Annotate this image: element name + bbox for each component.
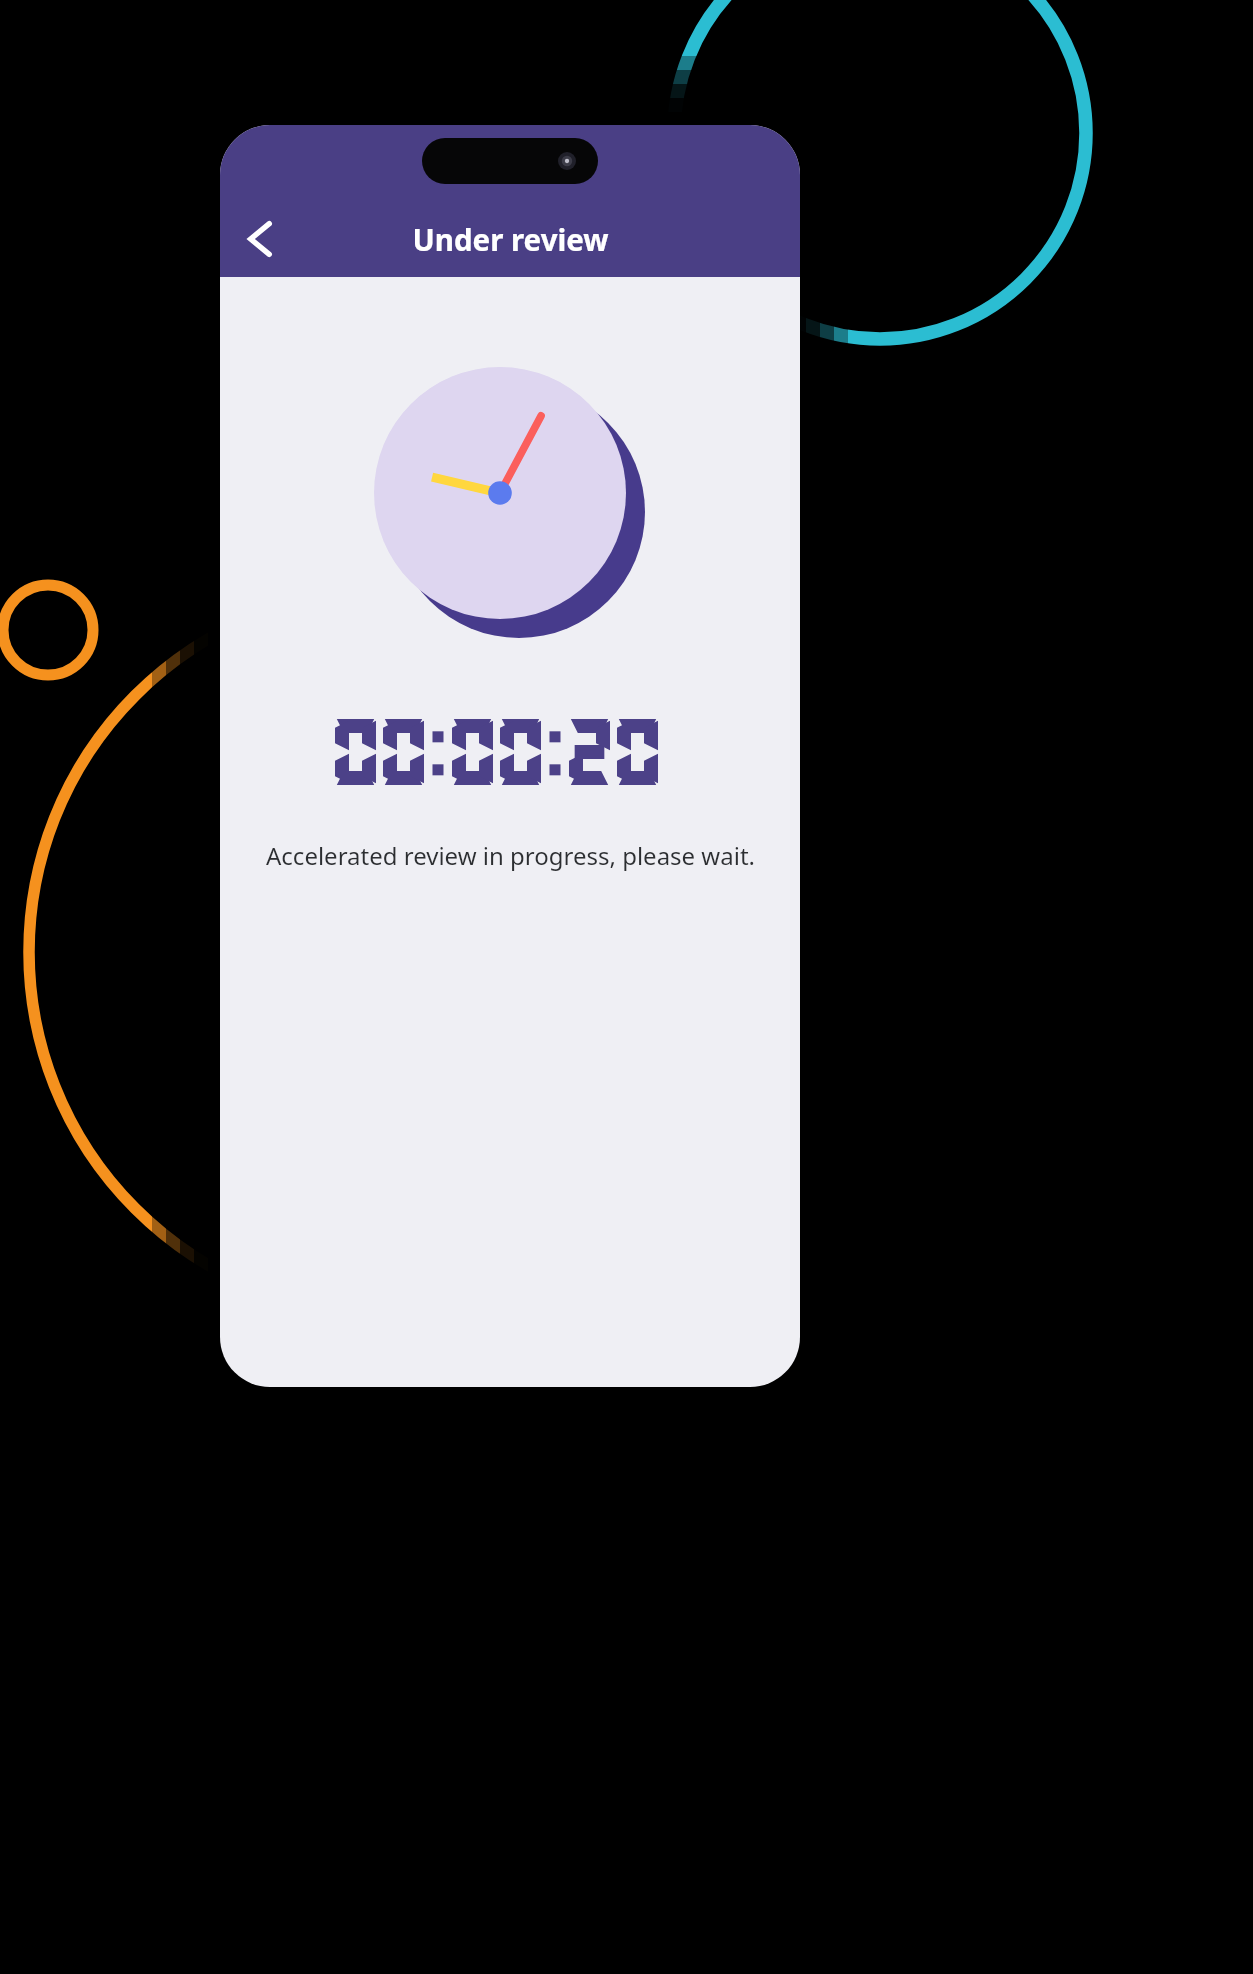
staticText: Accelerated review in progress, please w…: [266, 839, 755, 872]
staticText: Under review: [412, 219, 609, 259]
button[interactable]: Back: [230, 209, 290, 269]
